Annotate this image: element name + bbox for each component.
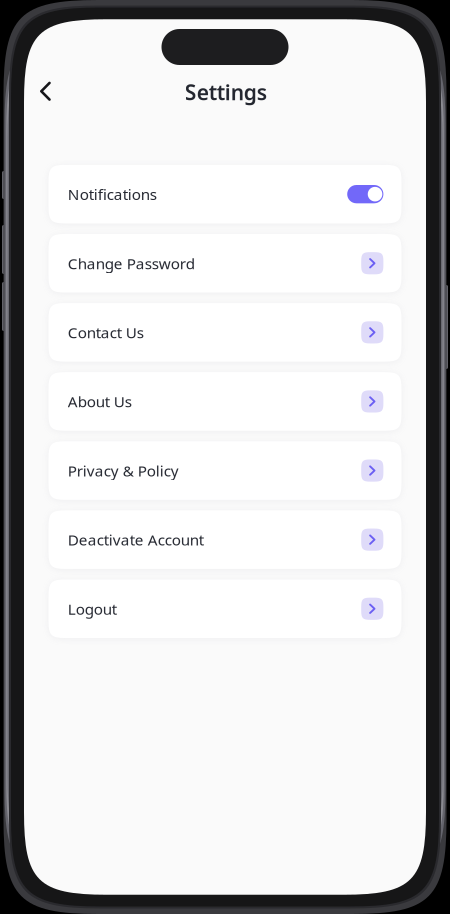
button[interactable]: Privacy & Policy	[48, 441, 401, 500]
staticText: Logout	[68, 598, 117, 619]
button[interactable]: Logout	[48, 579, 401, 638]
staticText: Contact Us	[68, 322, 144, 343]
staticText: Deactivate Account	[68, 529, 204, 550]
button[interactable]: Deactivate Account	[48, 510, 401, 569]
staticText: About Us	[68, 391, 132, 412]
staticText: Privacy & Policy	[68, 460, 179, 481]
staticText: Change Password	[68, 253, 195, 274]
button[interactable]: Contact Us	[48, 303, 401, 362]
button[interactable]: Notifications	[347, 185, 383, 203]
button[interactable]: Change Password	[48, 234, 401, 292]
button[interactable]: Back	[25, 71, 65, 111]
staticText: Notifications	[68, 184, 157, 204]
button[interactable]: About Us	[48, 372, 401, 431]
staticText: Settings	[185, 78, 267, 106]
